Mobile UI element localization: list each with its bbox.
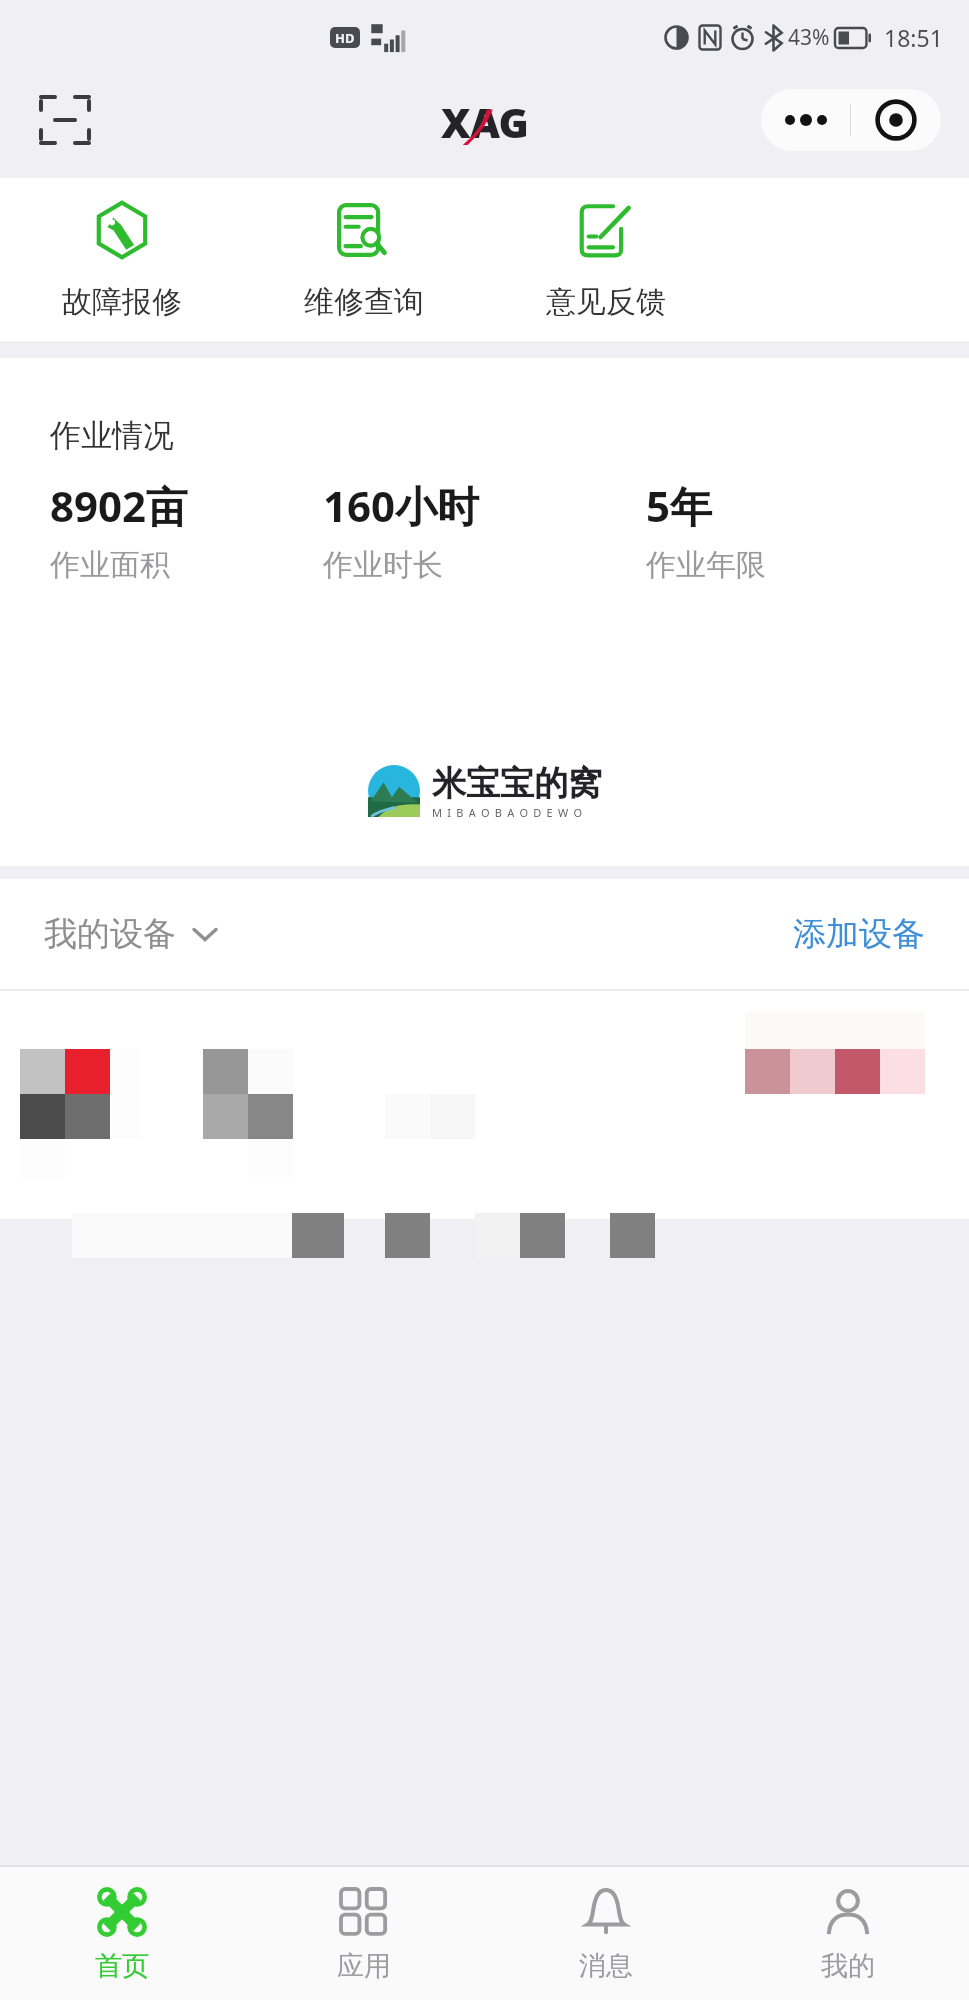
staticText: M I B A O B A O D E W O xyxy=(432,805,584,820)
staticText: 作业年限 xyxy=(646,546,766,584)
staticText: 维修查询 xyxy=(304,283,424,321)
staticText: 故障报修 xyxy=(62,283,182,321)
staticText: XAG xyxy=(441,94,529,146)
button[interactable]: 我的设备 xyxy=(44,913,218,955)
button[interactable]: 故障报修 xyxy=(0,178,243,341)
staticText: 8902亩 xyxy=(50,477,189,534)
staticText: 消息 xyxy=(579,1949,633,1983)
button[interactable]: 添加设备 xyxy=(793,913,925,955)
staticText: 意见反馈 xyxy=(546,283,666,321)
staticText: 我的 xyxy=(821,1949,875,1983)
staticText: 添加设备 xyxy=(793,913,925,955)
staticText: 作业情况 xyxy=(50,416,174,455)
button[interactable]: Close mini program xyxy=(851,89,941,151)
staticText: HD xyxy=(335,29,355,47)
button[interactable]: 应用 xyxy=(243,1867,485,2000)
staticText: 首页 xyxy=(95,1949,149,1983)
staticText: 我的设备 xyxy=(44,913,176,955)
staticText: 作业面积 xyxy=(50,546,170,584)
staticText: 43% xyxy=(788,23,830,52)
staticText: 作业时长 xyxy=(323,546,443,584)
button[interactable]: 意见反馈 xyxy=(485,178,727,341)
staticText: 应用 xyxy=(337,1949,391,1983)
staticText: 18:51 xyxy=(884,22,943,53)
button[interactable]: More options xyxy=(761,89,850,151)
button[interactable]: 我的 xyxy=(727,1867,969,2000)
staticText: 5年 xyxy=(646,477,713,534)
staticText: 米宝宝的窝 xyxy=(432,762,602,805)
button[interactable]: Scan QR code xyxy=(34,89,96,151)
button[interactable]: 维修查询 xyxy=(243,178,485,341)
button[interactable]: 首页 xyxy=(0,1867,243,2000)
button[interactable]: Device entry xyxy=(0,991,969,1219)
button[interactable]: 消息 xyxy=(485,1867,727,2000)
staticText: 160小时 xyxy=(323,477,480,534)
